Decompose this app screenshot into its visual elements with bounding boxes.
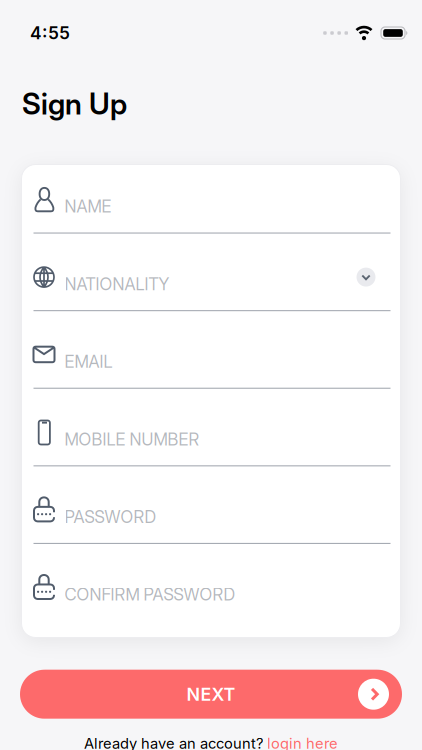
button[interactable]: PASSWORD (21, 491, 400, 543)
staticText: EMAIL (64, 351, 112, 372)
button[interactable]: CONFIRM PASSWORD (21, 568, 400, 620)
staticText: MOBILE NUMBER (64, 429, 199, 449)
button[interactable]: EMAIL (21, 336, 400, 388)
button[interactable]: NATIONALITY (21, 258, 400, 310)
button[interactable]: Select nationality (356, 268, 375, 287)
button[interactable]: NEXT (20, 670, 402, 719)
staticText: NEXT (186, 683, 235, 705)
button[interactable]: login here (267, 735, 338, 750)
button[interactable]: NAME (21, 180, 400, 232)
staticText: CONFIRM PASSWORD (64, 584, 235, 605)
staticText: NAME (64, 196, 111, 217)
staticText: login here (267, 735, 338, 750)
staticText: Sign Up (22, 86, 127, 121)
staticText: NATIONALITY (64, 274, 169, 294)
staticText: Already have an account? (84, 735, 263, 750)
staticText: PASSWORD (64, 507, 156, 527)
button[interactable]: MOBILE NUMBER (21, 413, 400, 465)
staticText: 4:55 (30, 23, 70, 43)
